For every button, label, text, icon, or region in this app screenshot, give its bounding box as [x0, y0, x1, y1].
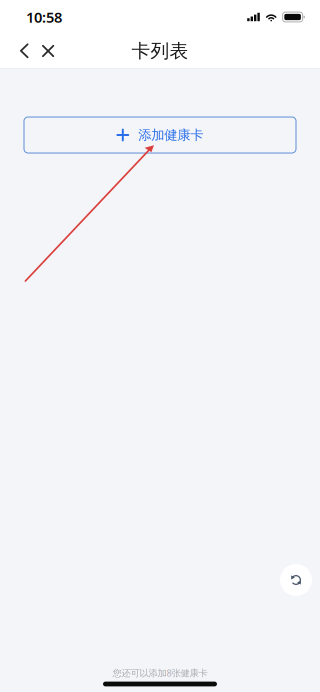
button[interactable]: Close	[42, 45, 54, 57]
staticText: 10:58	[26, 7, 62, 27]
staticText: 卡列表	[131, 39, 188, 62]
button[interactable]: Refresh	[280, 564, 312, 596]
button[interactable]: 添加健康卡	[24, 117, 296, 153]
staticText: 您还可以添加8张健康卡	[112, 667, 207, 679]
button[interactable]: Back	[20, 43, 29, 58]
staticText: 添加健康卡	[138, 127, 203, 143]
